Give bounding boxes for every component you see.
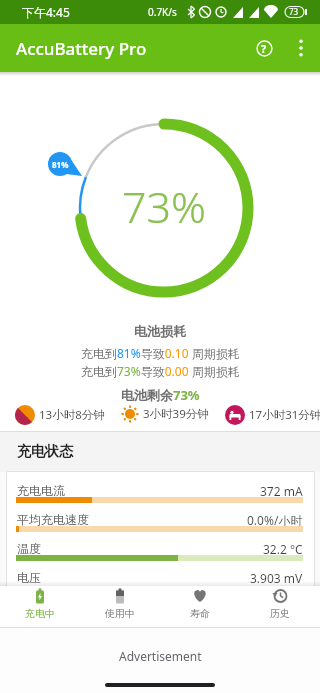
staticText: Advertisement xyxy=(119,648,202,664)
staticText: 3小时39分钟 xyxy=(143,406,209,422)
staticText: 平均充电速度 xyxy=(17,512,89,527)
button[interactable] xyxy=(0,628,320,693)
button[interactable]: 充电中 xyxy=(4,588,76,626)
staticText: 17小时31分钟 xyxy=(249,407,320,423)
button[interactable]: 寿命 xyxy=(164,588,236,626)
button[interactable] xyxy=(292,39,310,57)
button[interactable]: 使用中 xyxy=(84,588,156,626)
staticText: 充电状态 xyxy=(17,443,73,461)
staticText: 3.903 mV xyxy=(250,570,303,586)
staticText: 温度 xyxy=(17,541,41,556)
staticText: 下午4:45 xyxy=(22,4,70,20)
button[interactable]: 历史 xyxy=(244,588,316,626)
staticText: 0.0%/小时 xyxy=(247,512,303,528)
staticText: 充电到81%导致0.10 周期损耗 xyxy=(81,345,240,361)
staticText: 32.2 °C xyxy=(263,541,303,557)
staticText: 充电中 xyxy=(25,607,55,620)
staticText: ? xyxy=(261,41,267,56)
staticText: 0.7K/s xyxy=(148,5,177,19)
staticText: AccuBattery Pro xyxy=(16,37,147,60)
staticText: 73% xyxy=(122,177,207,233)
staticText: 电压 xyxy=(17,570,41,585)
staticText: 13小时8分钟 xyxy=(39,407,105,423)
staticText: 使用中 xyxy=(105,607,135,620)
staticText: 73 xyxy=(289,6,299,17)
staticText: 81% xyxy=(52,159,69,170)
staticText: 历史 xyxy=(270,607,290,620)
staticText: 充电到73%导致0.00 周期损耗 xyxy=(81,363,240,379)
staticText: 充电电流 xyxy=(17,483,65,498)
staticText: 寿命 xyxy=(190,607,210,620)
staticText: 电池损耗 xyxy=(134,323,186,339)
button[interactable]: ? xyxy=(250,34,278,62)
staticText: 电池剩余73% xyxy=(121,386,200,404)
staticText: 372 mA xyxy=(260,483,303,499)
